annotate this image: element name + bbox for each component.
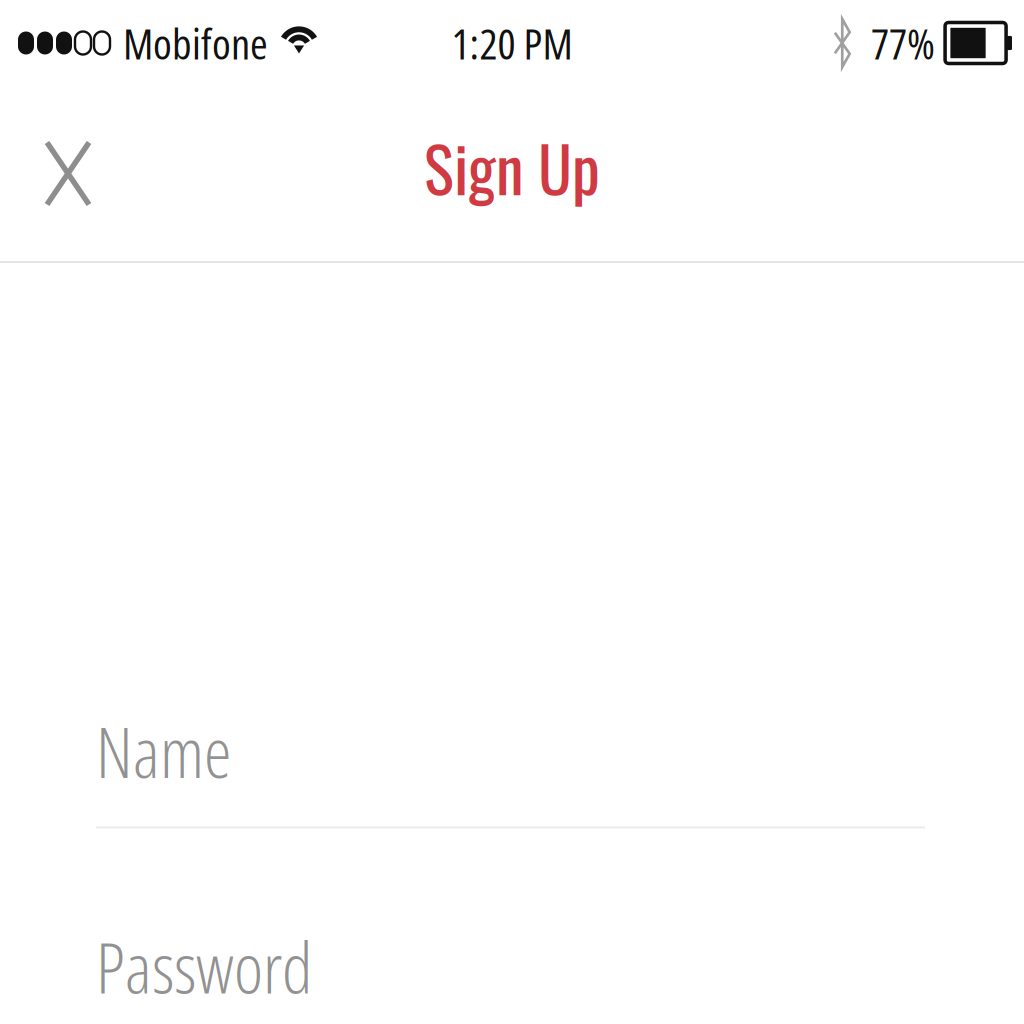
staticText: 77% (871, 14, 935, 72)
staticText: Password (96, 919, 312, 1014)
staticText: Sign Up (424, 121, 600, 213)
staticText: Name (96, 704, 231, 798)
button[interactable]: Name (96, 704, 925, 828)
staticText: Mobifone (123, 14, 268, 72)
staticText: 1:20 PM (451, 14, 572, 72)
button[interactable]: Close (0, 116, 129, 230)
button[interactable]: Password (96, 919, 925, 1014)
